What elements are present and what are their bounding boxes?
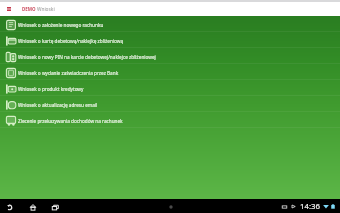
staticText: Wniosek o aktualizację adresu email bbox=[18, 102, 98, 108]
button[interactable]: Wniosek o założenie nowego rachunku bbox=[0, 16, 340, 32]
button[interactable]: Wniosek o produkt kredytowy bbox=[0, 80, 340, 96]
button[interactable]: Back bbox=[4, 202, 15, 213]
staticText: DEMO bbox=[22, 6, 36, 12]
button[interactable]: Zlecenie przekazywania dochodów na rachu… bbox=[0, 112, 340, 128]
staticText: Zlecenie przekazywania dochodów na rachu… bbox=[18, 118, 123, 124]
staticText: Wnioski bbox=[37, 6, 55, 13]
staticText: 14:36 bbox=[300, 201, 320, 212]
button[interactable]: Home bbox=[27, 202, 38, 213]
button[interactable]: Wniosek o wydanie zaświadczenia przez Ba… bbox=[0, 64, 340, 80]
button[interactable]: Wniosek o aktualizację adresu email bbox=[0, 96, 340, 112]
staticText: Wniosek o produkt kredytowy bbox=[18, 86, 84, 92]
staticText: Wniosek o założenie nowego rachunku bbox=[18, 22, 104, 28]
staticText: Wniosek o nowy PIN na karcie debetowej/n… bbox=[18, 54, 156, 60]
button[interactable]: Wniosek o kartę debetową/naklejkę zbliże… bbox=[0, 32, 340, 48]
button[interactable]: Wniosek o nowy PIN na karcie debetowej/n… bbox=[0, 48, 340, 64]
button[interactable]: Open navigation menu bbox=[5, 5, 13, 13]
staticText: Wniosek o wydanie zaświadczenia przez Ba… bbox=[18, 70, 119, 76]
button[interactable]: Recent apps bbox=[50, 202, 61, 213]
staticText: Wniosek o kartę debetową/naklejkę zbliże… bbox=[18, 38, 124, 44]
